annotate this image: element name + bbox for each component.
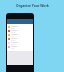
button[interactable] xyxy=(7,37,33,41)
button[interactable] xyxy=(7,45,33,49)
button[interactable] xyxy=(7,33,33,37)
button[interactable] xyxy=(7,29,33,33)
button[interactable] xyxy=(7,41,33,45)
button[interactable] xyxy=(7,25,33,29)
staticText: Organize Your Work xyxy=(16,3,49,7)
